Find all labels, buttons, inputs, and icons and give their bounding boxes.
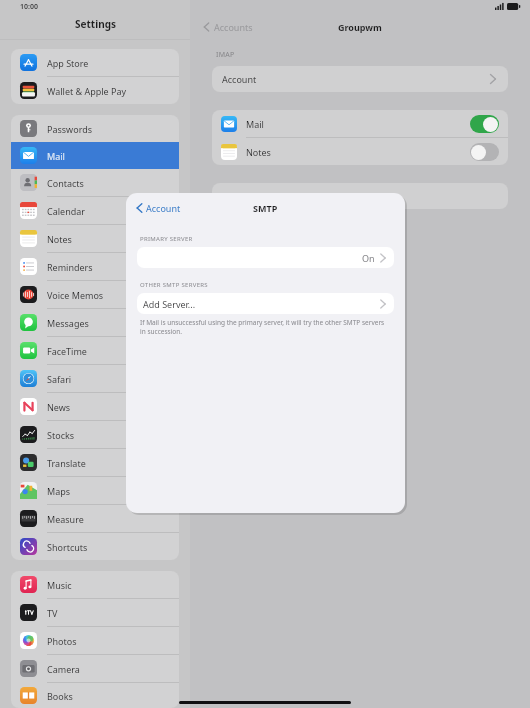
staticText: PRIMARY SERVER bbox=[140, 235, 193, 243]
staticText: 10:00 bbox=[20, 2, 38, 12]
staticText: Camera bbox=[47, 663, 80, 675]
button[interactable]: Wallet & Apple Pay bbox=[11, 77, 179, 104]
button[interactable]: Mail bbox=[212, 110, 508, 137]
staticText: Account bbox=[146, 202, 181, 214]
staticText: Mail bbox=[246, 118, 264, 130]
staticText: FaceTime bbox=[47, 345, 87, 357]
button[interactable]: Camera bbox=[11, 655, 179, 682]
button[interactable]: Toggle off bbox=[470, 143, 499, 161]
staticText: Translate bbox=[47, 457, 86, 469]
staticText: Contacts bbox=[47, 177, 84, 189]
button[interactable]: Mail bbox=[11, 142, 179, 169]
button[interactable]: Voice Memos bbox=[11, 281, 179, 308]
staticText: If Mail is unsuccessful using the primar… bbox=[140, 318, 391, 336]
button[interactable]: Safari bbox=[11, 365, 179, 392]
staticText: Passwords bbox=[47, 123, 93, 135]
staticText: SMTP bbox=[253, 202, 278, 214]
button[interactable]: Account bbox=[133, 199, 183, 217]
button[interactable]: Notes bbox=[11, 225, 179, 252]
button[interactable]: Music bbox=[11, 571, 179, 598]
staticText: Music bbox=[47, 579, 72, 591]
staticText: OTHER SMTP SERVERS bbox=[140, 281, 208, 289]
button[interactable]: Notes bbox=[212, 138, 508, 165]
button[interactable]: TV bbox=[11, 599, 179, 626]
button[interactable]: App Store bbox=[11, 49, 179, 76]
staticText: Maps bbox=[47, 485, 71, 497]
button[interactable]: Messages bbox=[11, 309, 179, 336]
staticText: Shortcuts bbox=[47, 541, 88, 553]
button[interactable]: Translate bbox=[11, 449, 179, 476]
button[interactable] bbox=[212, 183, 508, 209]
staticText: On bbox=[362, 252, 375, 264]
staticText: Wallet & Apple Pay bbox=[47, 85, 127, 97]
staticText: IMAP bbox=[216, 50, 235, 60]
staticText: Notes bbox=[47, 233, 72, 245]
button[interactable]: Account bbox=[212, 66, 508, 92]
button[interactable]: Stocks bbox=[11, 421, 179, 448]
button[interactable]: Measure bbox=[11, 505, 179, 532]
button[interactable]: Reminders bbox=[11, 253, 179, 280]
button[interactable]: News bbox=[11, 393, 179, 420]
staticText: Groupwm bbox=[338, 21, 382, 33]
staticText: Settings bbox=[75, 17, 116, 31]
staticText: Calendar bbox=[47, 205, 85, 217]
staticText: Stocks bbox=[47, 429, 75, 441]
staticText: App Store bbox=[47, 57, 89, 69]
button[interactable]: Photos bbox=[11, 627, 179, 654]
staticText: Add Server... bbox=[143, 298, 196, 310]
staticText: Accounts bbox=[214, 21, 253, 33]
staticText: Notes bbox=[246, 146, 271, 158]
staticText: Measure bbox=[47, 513, 84, 525]
staticText: TV bbox=[47, 607, 58, 619]
staticText: Mail bbox=[47, 150, 65, 162]
button[interactable]: Contacts bbox=[11, 169, 179, 196]
staticText: Messages bbox=[47, 317, 89, 329]
staticText: Account bbox=[222, 73, 257, 85]
button[interactable]: Add Server... bbox=[137, 293, 394, 314]
button[interactable]: FaceTime bbox=[11, 337, 179, 364]
button[interactable]: Passwords bbox=[11, 115, 179, 142]
staticText: News bbox=[47, 401, 71, 413]
button[interactable]: Calendar bbox=[11, 197, 179, 224]
staticText: Books bbox=[47, 690, 73, 702]
button[interactable]: On bbox=[137, 247, 394, 268]
staticText: Reminders bbox=[47, 261, 93, 273]
staticText: Voice Memos bbox=[47, 289, 104, 301]
button[interactable]: Maps bbox=[11, 477, 179, 504]
button[interactable]: Shortcuts bbox=[11, 533, 179, 560]
staticText: Safari bbox=[47, 373, 72, 385]
button[interactable]: Books bbox=[11, 683, 179, 708]
staticText: Photos bbox=[47, 635, 77, 647]
button[interactable]: Accounts bbox=[202, 21, 253, 33]
button[interactable]: Toggle on bbox=[470, 115, 499, 133]
